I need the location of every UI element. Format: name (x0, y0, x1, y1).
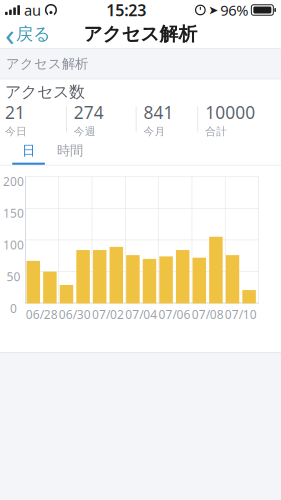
staticText: 07/02 (92, 306, 124, 322)
staticText: アクセス解析 (6, 55, 88, 72)
staticText: 合計 (205, 125, 227, 138)
staticText: 07/04 (125, 306, 157, 322)
staticText: 今日 (5, 125, 27, 138)
staticText: 今週 (74, 125, 96, 138)
staticText: 100 (3, 237, 24, 253)
staticText: au (24, 0, 41, 20)
staticText: ‹ (5, 14, 15, 54)
staticText: 日 (22, 142, 35, 159)
staticText: 06/30 (59, 306, 91, 322)
staticText: アクセス解析 (83, 22, 197, 45)
button[interactable]: 時間 (45, 142, 90, 165)
staticText: 15:23 (106, 0, 146, 21)
staticText: ➤ (208, 3, 218, 17)
staticText: 時間 (57, 142, 83, 159)
staticText: 150 (3, 205, 24, 221)
staticText: 21 (5, 101, 25, 124)
staticText: 07/06 (158, 306, 190, 322)
staticText: 戻る (16, 23, 51, 45)
staticText: 今月 (143, 125, 165, 138)
staticText: 07/08 (192, 306, 224, 322)
staticText: 06/28 (26, 306, 58, 322)
staticText: 200 (3, 173, 24, 189)
staticText: 0 (10, 300, 17, 316)
staticText: 10000 (205, 101, 255, 124)
staticText: 274 (74, 101, 104, 124)
staticText: 841 (143, 101, 173, 124)
staticText: アクセス数 (5, 82, 85, 102)
button[interactable]: ‹ (0, 20, 58, 48)
staticText: 07/10 (225, 306, 257, 322)
staticText: 50 (7, 269, 21, 285)
staticText: 96% (220, 0, 248, 20)
button[interactable]: 日 (0, 142, 45, 165)
